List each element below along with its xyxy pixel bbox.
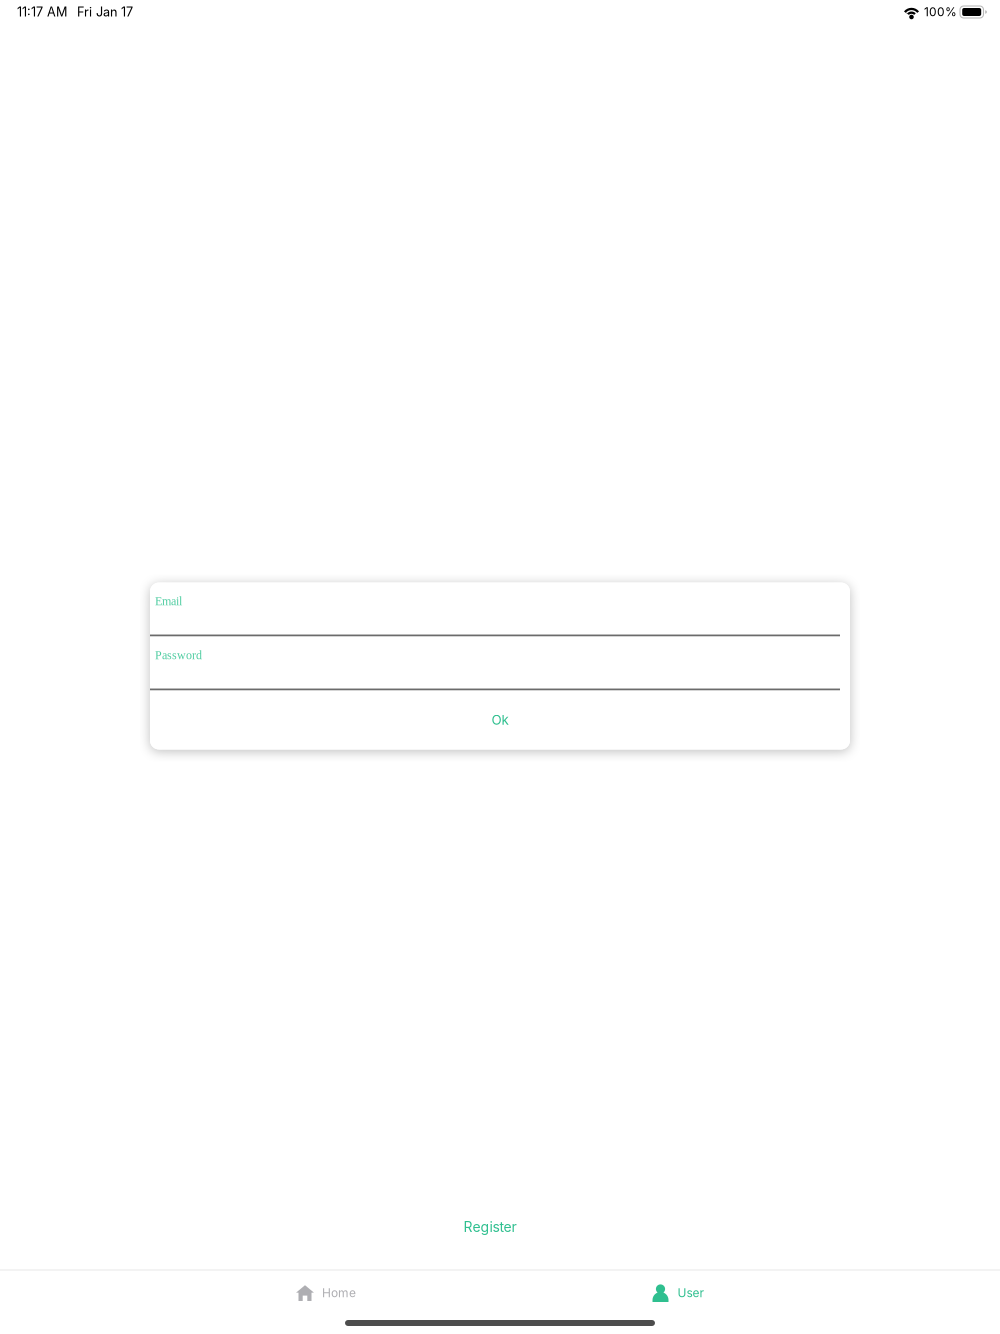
button[interactable]: Home	[201, 1271, 451, 1315]
button[interactable]: User	[553, 1271, 803, 1315]
staticText: Email	[155, 594, 182, 608]
staticText: 11:17 AM	[17, 4, 67, 20]
staticText: Password	[155, 648, 202, 662]
staticText: Home	[322, 1286, 356, 1300]
staticText: Register	[463, 1218, 516, 1235]
staticText: Ok	[491, 712, 508, 728]
staticText: Fri Jan 17	[77, 4, 133, 20]
button[interactable]: Ok	[150, 690, 850, 749]
staticText: User	[677, 1286, 704, 1300]
button[interactable]: Register	[415, 1207, 565, 1247]
staticText: 100%	[924, 5, 957, 19]
